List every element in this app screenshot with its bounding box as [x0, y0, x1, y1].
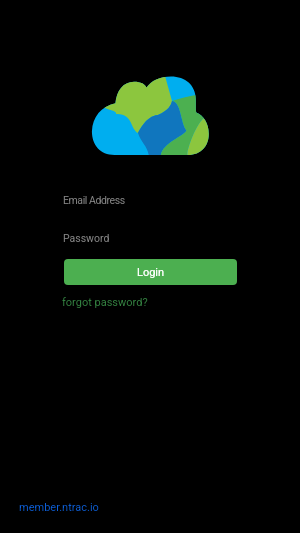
staticText: Login — [137, 266, 165, 279]
button[interactable]: member.ntrac.io — [19, 501, 99, 514]
button[interactable]: Login — [64, 259, 237, 285]
staticText: Password — [63, 232, 110, 244]
other: Logo — [88, 72, 214, 160]
staticText: Email Address — [63, 194, 125, 206]
button[interactable]: forgot password? — [62, 296, 148, 309]
staticText: member.ntrac.io — [19, 501, 99, 514]
staticText: forgot password? — [62, 296, 148, 309]
